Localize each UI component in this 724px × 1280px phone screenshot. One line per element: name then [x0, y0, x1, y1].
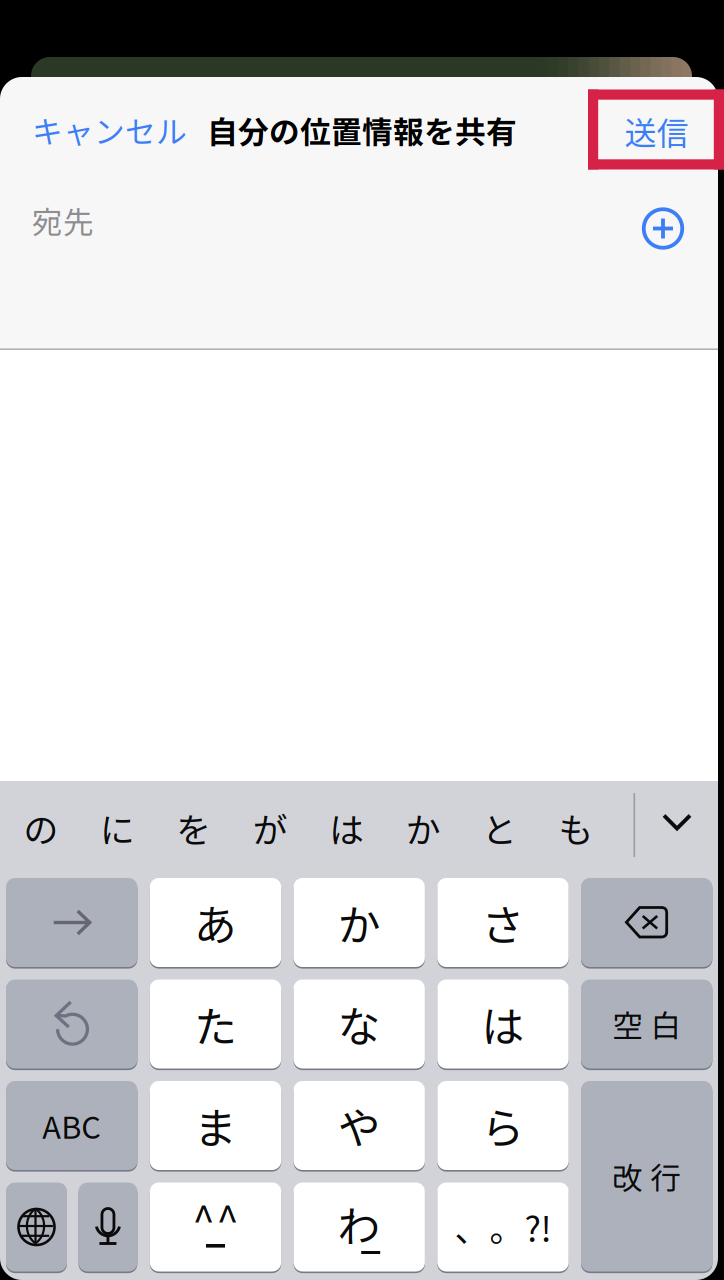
staticText: わ: [338, 1193, 381, 1255]
button[interactable]: も: [538, 791, 614, 865]
button[interactable]: あ: [150, 877, 281, 968]
staticText: ら: [481, 1095, 524, 1156]
staticText: と: [482, 803, 517, 853]
staticText: ^^: [192, 1189, 238, 1247]
button[interactable]: 、。?!: [437, 1181, 569, 1272]
button[interactable]: に: [79, 791, 156, 865]
button[interactable]: は: [437, 978, 569, 1069]
button[interactable]: [78, 1181, 137, 1272]
button[interactable]: ま: [150, 1080, 281, 1171]
button[interactable]: や: [293, 1080, 425, 1171]
staticText: キャンセル: [32, 108, 187, 152]
staticText: ABC: [42, 1103, 101, 1148]
button[interactable]: キーボードを閉じる: [662, 813, 692, 831]
staticText: か: [406, 803, 441, 853]
button[interactable]: ^^: [150, 1181, 281, 1272]
button[interactable]: を: [156, 791, 232, 865]
staticText: か: [338, 892, 381, 953]
button[interactable]: ら: [437, 1080, 569, 1171]
button[interactable]: [6, 978, 137, 1069]
staticText: た: [194, 993, 237, 1055]
button[interactable]: 送信: [591, 90, 722, 172]
button[interactable]: の: [3, 791, 79, 865]
button[interactable]: [6, 1181, 67, 1272]
staticText: さ: [481, 892, 524, 953]
staticText: の: [23, 803, 58, 853]
button[interactable]: [6, 877, 137, 968]
staticText: が: [253, 803, 288, 853]
button[interactable]: は: [308, 791, 385, 865]
button[interactable]: [581, 877, 712, 968]
staticText: に: [100, 803, 135, 853]
staticText: あ: [194, 892, 237, 953]
staticText: 自分の位置情報を共有: [207, 108, 517, 152]
staticText: も: [558, 803, 593, 853]
button[interactable]: 改行: [581, 1080, 712, 1272]
staticText: ま: [194, 1095, 237, 1156]
staticText: は: [329, 803, 364, 853]
button[interactable]: が: [232, 791, 308, 865]
button[interactable]: か: [293, 877, 425, 968]
button[interactable]: 宛先を追加: [642, 207, 684, 249]
staticText: 空白: [612, 1002, 681, 1046]
button[interactable]: ABC: [6, 1080, 137, 1171]
staticText: を: [176, 803, 211, 853]
button[interactable]: キャンセル: [32, 89, 222, 171]
staticText: や: [338, 1095, 381, 1156]
staticText: は: [481, 993, 524, 1055]
staticText: 改行: [612, 1154, 681, 1198]
button[interactable]: な: [293, 978, 425, 1069]
staticText: 送信: [624, 108, 688, 154]
staticText: な: [338, 993, 381, 1055]
button[interactable]: 空白: [581, 978, 712, 1069]
button[interactable]: と: [461, 791, 538, 865]
staticText: 、。?!: [454, 1202, 551, 1252]
button[interactable]: か: [385, 791, 461, 865]
button[interactable]: さ: [437, 877, 569, 968]
button[interactable]: た: [150, 978, 281, 1069]
button[interactable]: わ: [293, 1181, 425, 1272]
staticText: 宛先: [32, 198, 94, 243]
